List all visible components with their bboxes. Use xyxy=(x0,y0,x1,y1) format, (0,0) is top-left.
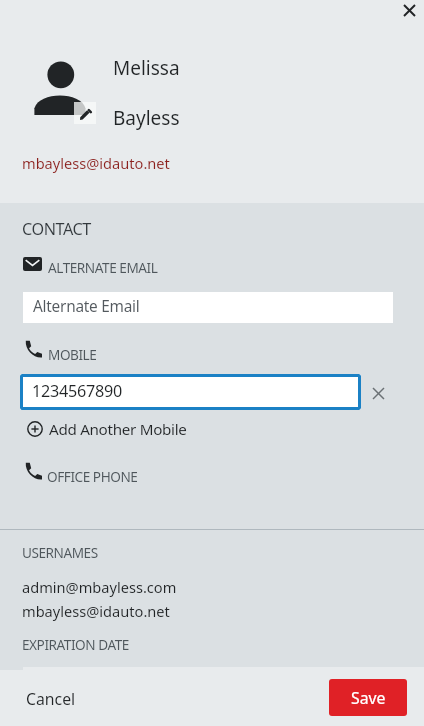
staticText: Alternate Email xyxy=(33,296,140,317)
button[interactable]: Alternate Email xyxy=(23,292,393,323)
staticText: MOBILE xyxy=(48,345,97,364)
button[interactable]: 1234567890 xyxy=(20,374,361,410)
staticText: admin@mbayless.com xyxy=(22,577,177,597)
staticText: Bayless xyxy=(113,105,180,131)
staticText: Add Another Mobile xyxy=(49,419,187,439)
button[interactable]: Cancel xyxy=(17,682,85,716)
staticText: OFFICE PHONE xyxy=(47,467,138,486)
staticText: USERNAMES xyxy=(22,543,98,562)
staticText: Melissa xyxy=(113,55,180,81)
staticText: Cancel xyxy=(26,688,76,710)
staticText: Save xyxy=(351,687,386,709)
staticText: ALTERNATE EMAIL xyxy=(48,258,158,277)
button[interactable]: Save xyxy=(329,679,407,716)
button[interactable]: Remove mobile number xyxy=(364,379,392,407)
staticText: 1234567890 xyxy=(32,380,123,402)
button[interactable]: Add Another Mobile xyxy=(27,419,187,439)
button[interactable]: mbayless@idauto.net xyxy=(22,153,170,173)
staticText: mbayless@idauto.net xyxy=(22,601,170,621)
button[interactable]: Close xyxy=(393,0,424,26)
staticText: CONTACT xyxy=(22,218,91,240)
button[interactable]: Edit profile picture xyxy=(22,55,98,127)
staticText: EXPIRATION DATE xyxy=(22,635,129,654)
